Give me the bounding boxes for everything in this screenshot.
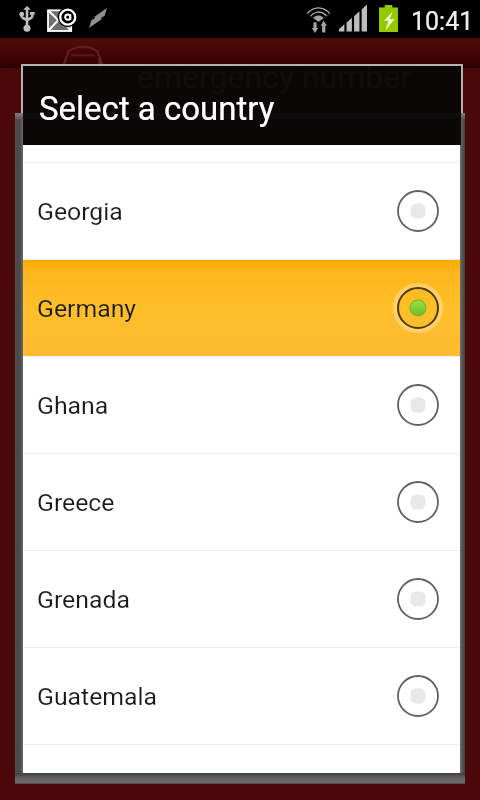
other: Not selected [395,673,441,719]
staticText: Select a country [39,89,275,128]
other: Battery charging [379,5,398,32]
other: Not selected [395,479,441,525]
staticText: emergency number [137,58,412,96]
other: New email [48,9,77,31]
other: Not selected [395,576,441,622]
other: Wi-Fi [304,5,333,33]
other: Not selected [395,382,441,428]
button[interactable]: Ghana [23,357,460,453]
other: Charging [89,8,107,28]
other: Selected [395,285,441,331]
button[interactable]: Greece [23,454,460,550]
staticText: Guatemala [37,682,158,711]
button[interactable]: Guatemala [23,648,460,744]
staticText: 10:41 [411,7,474,36]
other: USB connected [19,6,35,32]
staticText: Greece [37,488,115,517]
other: Mobile signal [339,4,367,32]
other: Not selected [395,188,441,234]
staticText: Germany [37,294,137,323]
button[interactable]: Georgia [23,163,460,259]
staticText: Ghana [37,391,109,420]
staticText: Grenada [37,585,130,614]
button[interactable]: Germany [23,260,460,356]
button[interactable]: Grenada [23,551,460,647]
staticText: Georgia [37,197,123,226]
